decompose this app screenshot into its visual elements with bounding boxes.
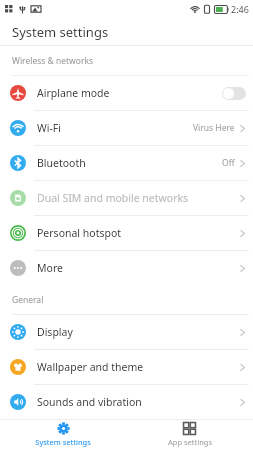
staticText: System settings [35,437,91,447]
staticText: 2:46 [231,3,249,15]
staticText: Off [222,157,235,169]
staticText: Wi-Fi [37,121,62,135]
staticText: Virus Here [193,122,235,134]
staticText: Wallpaper and theme [37,360,144,374]
staticText: Bluetooth [37,156,86,170]
staticText: More [37,261,63,275]
button[interactable]: Personal hotspot [0,216,253,251]
button[interactable]: Display [0,315,253,350]
button[interactable]: App settings [126,419,253,450]
button[interactable]: Sounds and vibration [0,385,253,419]
button[interactable]: Wallpaper and theme [0,350,253,385]
staticText: Airplane mode [37,86,110,100]
button[interactable]: Airplane mode toggle [222,87,246,100]
staticText: Personal hotspot [37,226,122,240]
staticText: General [12,294,44,306]
staticText: Dual SIM and mobile networks [37,191,189,205]
button[interactable]: Wi-Fi [0,111,253,146]
staticText: Sounds and vibration [37,395,142,409]
staticText: App settings [168,437,212,447]
button[interactable]: System settings [0,419,126,450]
button[interactable]: Airplane mode [0,76,253,111]
staticText: System settings [12,23,109,41]
staticText: Display [37,325,73,339]
button[interactable]: Dual SIM and mobile networks [0,181,253,216]
button[interactable]: More [0,251,253,285]
button[interactable]: Bluetooth [0,146,253,181]
staticText: Wireless & networks [12,55,94,67]
